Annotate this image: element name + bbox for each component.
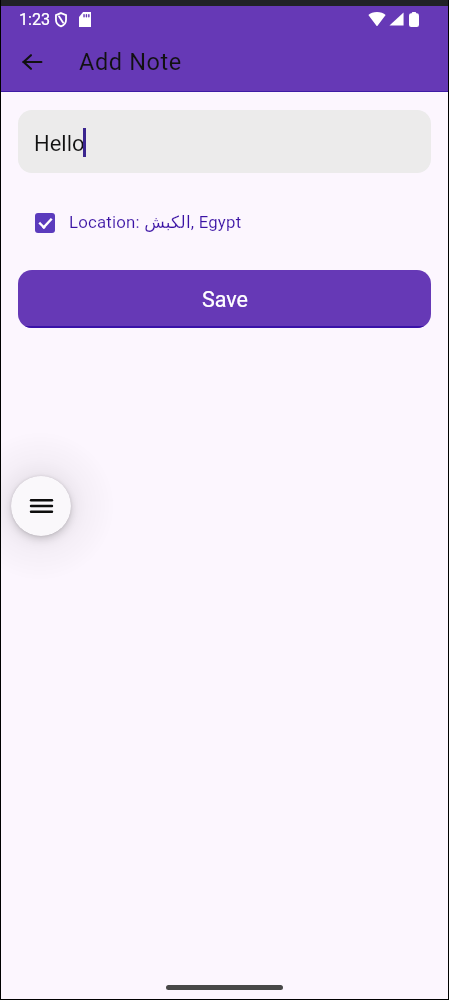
staticText: Add Note <box>79 48 182 76</box>
button[interactable]: Location: الكبش, Egypt <box>35 213 242 233</box>
staticText: Location: الكبش, Egypt <box>69 212 242 232</box>
button[interactable]: Back <box>1 34 64 90</box>
staticText: Save <box>202 287 248 312</box>
button[interactable]: Save <box>18 270 431 328</box>
button[interactable]: Hello <box>18 110 431 173</box>
button[interactable]: Menu <box>11 476 71 536</box>
staticText: 1:23 <box>19 10 51 29</box>
staticText: Hello <box>34 131 85 157</box>
